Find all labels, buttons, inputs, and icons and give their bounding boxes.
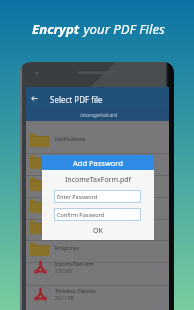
staticText: Ringtones	[55, 245, 80, 252]
staticText: Add Password	[73, 158, 123, 168]
button[interactable]	[26, 176, 169, 198]
staticText: /storage/sdcard	[80, 112, 118, 119]
staticText: IncomeTaxForm.pdf	[65, 175, 131, 185]
button[interactable]: Confirm Password	[54, 208, 141, 221]
button[interactable]: OK	[42, 226, 154, 236]
button[interactable]	[26, 219, 169, 241]
staticText: IncomeTaxForm	[55, 261, 94, 268]
staticText: Notifications	[55, 136, 86, 143]
button[interactable]: Enter Password	[54, 190, 141, 203]
staticText: Select PDF file	[50, 94, 103, 105]
button[interactable]: Notifications	[26, 132, 169, 154]
button[interactable]: Ringtones	[26, 241, 169, 263]
button[interactable]: IncomeTaxForm	[26, 258, 169, 285]
button[interactable]: Back	[26, 87, 169, 108]
staticText: Timeless Classics	[55, 288, 96, 295]
staticText: 20.11 KB	[55, 295, 74, 301]
button[interactable]: Timeless Classics	[26, 285, 169, 310]
button[interactable]	[26, 154, 169, 176]
staticText: 3.51 MB	[55, 268, 73, 274]
staticText: your PDF Files	[80, 20, 165, 38]
button[interactable]	[26, 198, 169, 220]
button[interactable]: Back	[29, 93, 40, 104]
staticText: OK	[93, 226, 103, 236]
button[interactable]: Add Password	[42, 155, 154, 170]
staticText: Encrypt	[32, 20, 80, 38]
staticText: Enter Password	[57, 193, 98, 200]
staticText: Confirm Password	[57, 211, 105, 218]
